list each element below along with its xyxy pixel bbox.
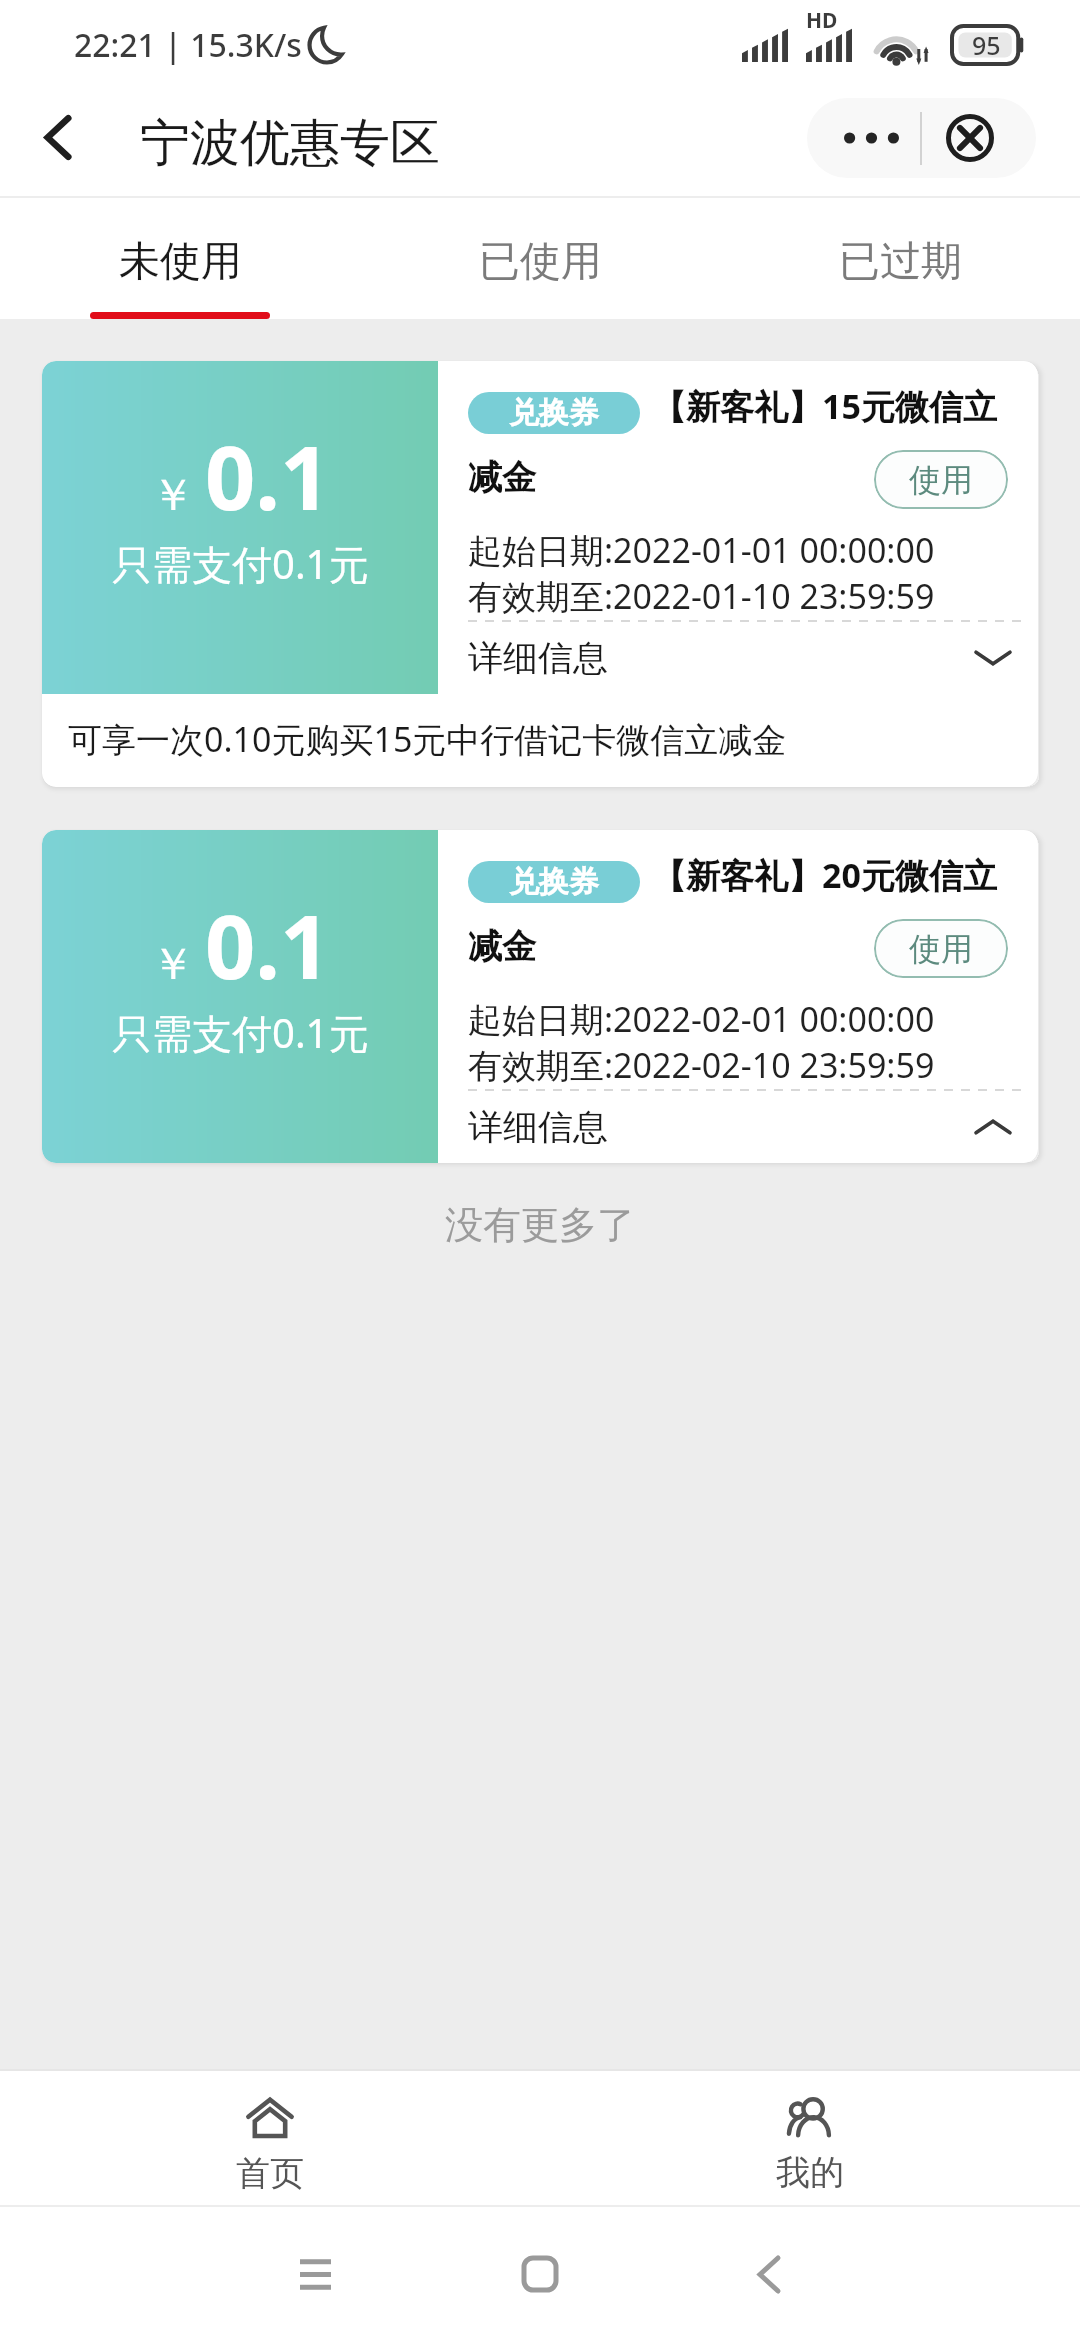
staticText: 宁波优惠专区 (140, 112, 440, 175)
staticText: 只需支付0.1元 (112, 536, 369, 591)
staticText: 可享一次0.10元购买15元中行借记卡微信立减金 (68, 716, 787, 762)
staticText: 我的 (776, 2151, 844, 2194)
staticText: 详细信息 (468, 1105, 608, 1149)
staticText: 减金 (468, 456, 536, 499)
button[interactable]: ￥ (42, 361, 1038, 787)
staticText: ￥ (151, 937, 195, 992)
button[interactable]: ￥ (42, 830, 1038, 1163)
staticText: 首页 (236, 2152, 304, 2195)
staticText: 有效期至:2022-02-10 23:59:59 (468, 1042, 935, 1088)
staticText: 减金 (468, 925, 536, 968)
button[interactable]: 已使用 (360, 198, 720, 319)
staticText: 详细信息 (468, 636, 608, 680)
staticText: 兑换券 (509, 863, 599, 901)
staticText: 有效期至:2022-01-10 23:59:59 (468, 573, 935, 619)
staticText: 没有更多了 (445, 1201, 635, 1249)
button[interactable]: 使用 (874, 450, 1008, 509)
staticText: 使用 (909, 929, 973, 969)
staticText: 使用 (909, 460, 973, 500)
button[interactable]: More options (807, 98, 920, 178)
staticText: 起始日期:2022-01-01 00:00:00 (468, 527, 935, 573)
staticText: ￥ (151, 468, 195, 523)
staticText: 只需支付0.1元 (112, 1005, 369, 1060)
staticText: 未使用 (119, 236, 242, 288)
staticText: 兑换券 (509, 394, 599, 432)
button[interactable]: Back (715, 2224, 815, 2324)
staticText: 22:21 | 15.3K/s (74, 23, 302, 67)
staticText: 已过期 (839, 236, 962, 288)
staticText: 【新客礼】15元微信立 (652, 383, 997, 429)
button[interactable]: Home (490, 2224, 590, 2324)
staticText: 起始日期:2022-02-01 00:00:00 (468, 996, 935, 1042)
staticText: 0.1 (205, 885, 331, 1005)
button[interactable]: 详细信息 (468, 622, 1024, 694)
button[interactable]: 我的 (540, 2071, 1080, 2205)
button[interactable]: 未使用 (0, 198, 360, 319)
button[interactable]: 首页 (0, 2071, 540, 2205)
staticText: 95 (972, 28, 1001, 62)
button[interactable]: Recents (265, 2224, 365, 2324)
button[interactable]: 已过期 (720, 198, 1080, 319)
staticText: HD (806, 6, 838, 35)
staticText: 【新客礼】20元微信立 (652, 852, 997, 898)
button[interactable]: 详细信息 (468, 1091, 1024, 1163)
button[interactable]: Close (922, 98, 1036, 178)
button[interactable]: 使用 (874, 919, 1008, 978)
staticText: 已使用 (479, 236, 602, 288)
button[interactable]: Back (20, 99, 96, 175)
staticText: 0.1 (205, 416, 331, 536)
